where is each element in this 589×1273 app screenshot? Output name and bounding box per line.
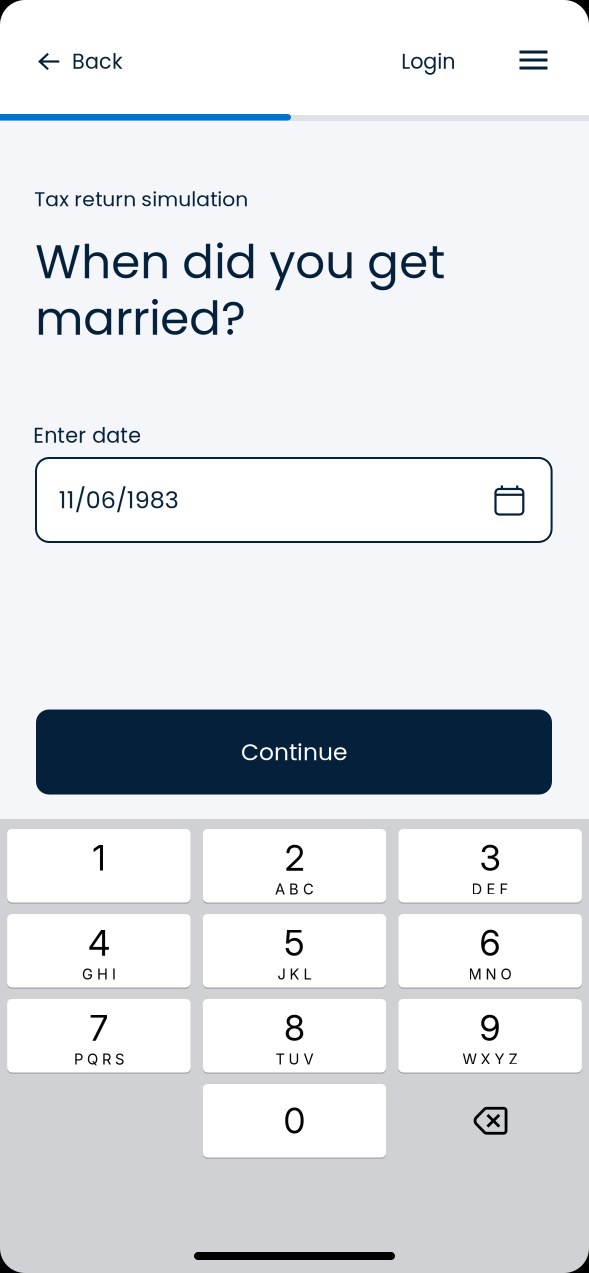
- button[interactable]: 11/06/1983: [36, 458, 552, 542]
- staticText: 9: [480, 1006, 501, 1049]
- staticText: P Q R S: [74, 1050, 124, 1068]
- button[interactable]: 5: [203, 914, 386, 987]
- staticText: 0: [283, 1099, 305, 1142]
- staticText: G H I: [82, 965, 116, 983]
- staticText: Back: [72, 47, 123, 76]
- staticText: Continue: [241, 736, 347, 768]
- staticText: 8: [284, 1006, 305, 1049]
- button[interactable]: 8: [203, 999, 386, 1072]
- button[interactable]: 0: [203, 1084, 386, 1157]
- button[interactable]: 6: [398, 914, 582, 987]
- staticText: 2: [284, 836, 304, 879]
- staticText: W X Y Z: [463, 1050, 518, 1068]
- staticText: Enter date: [33, 421, 141, 450]
- button[interactable]: 4: [7, 914, 191, 987]
- button[interactable]: Login: [385, 9, 501, 114]
- button[interactable]: Back: [0, 9, 137, 114]
- staticText: M N O: [469, 965, 512, 983]
- button[interactable]: 1: [7, 829, 191, 902]
- staticText: Tax return simulation: [34, 185, 248, 213]
- staticText: 1: [92, 836, 105, 879]
- staticText: 5: [284, 921, 305, 964]
- staticText: 11/06/1983: [59, 483, 179, 517]
- staticText: 3: [480, 836, 501, 879]
- staticText: T U V: [275, 1050, 313, 1068]
- staticText: When did you get married?: [35, 229, 445, 351]
- button[interactable]: 7: [7, 999, 191, 1072]
- button[interactable]: 2: [203, 829, 386, 902]
- button[interactable]: Continue: [36, 709, 552, 794]
- staticText: Login: [401, 47, 455, 76]
- button[interactable]: 9: [398, 999, 582, 1072]
- staticText: 4: [88, 921, 110, 964]
- staticText: A B C: [275, 880, 314, 898]
- button[interactable]: Delete: [398, 1084, 582, 1157]
- staticText: D E F: [472, 880, 509, 898]
- staticText: J K L: [277, 965, 311, 983]
- staticText: 6: [480, 921, 501, 964]
- button[interactable]: 3: [398, 829, 582, 902]
- staticText: 7: [89, 1006, 108, 1049]
- button[interactable]: Menu: [501, 9, 565, 114]
